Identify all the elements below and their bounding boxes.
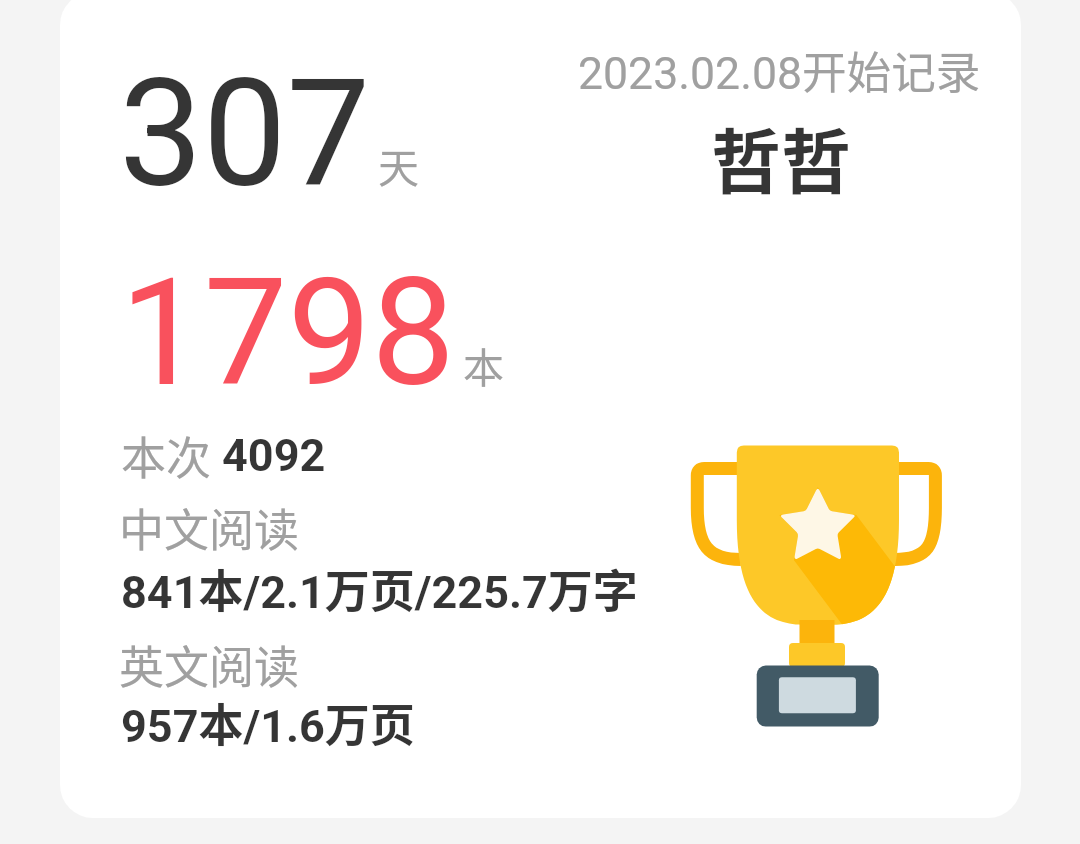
staticText: 841本/2.1万页/225.7万字 xyxy=(121,556,638,621)
staticText: 307 xyxy=(119,47,371,187)
button[interactable]: Achievement trophy xyxy=(680,440,955,735)
staticText: 1798 xyxy=(120,246,455,386)
button[interactable]: 307 xyxy=(110,60,430,200)
button[interactable]: 本次 xyxy=(110,420,380,486)
staticText: 4092 xyxy=(222,429,326,482)
staticText: 中文阅读 xyxy=(119,495,300,560)
staticText: 天 xyxy=(378,135,419,194)
staticText: 本 xyxy=(463,335,504,394)
staticText: 957本/1.6万页 xyxy=(121,690,415,755)
staticText: 哲哲 xyxy=(711,107,851,208)
button[interactable]: 英文阅读 xyxy=(110,629,440,754)
button[interactable]: 1798 xyxy=(110,260,520,400)
staticText: 英文阅读 xyxy=(119,632,300,697)
staticText: 本次 xyxy=(121,423,212,488)
button[interactable] xyxy=(60,0,1021,818)
staticText: 2023.02.08开始记录 xyxy=(578,37,981,102)
button[interactable]: 2023.02.08开始记录 xyxy=(570,30,990,210)
button[interactable]: 中文阅读 xyxy=(110,492,670,617)
